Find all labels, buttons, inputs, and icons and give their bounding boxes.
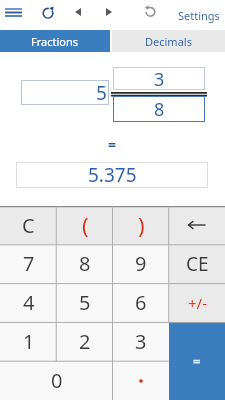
button[interactable]: 8: [57, 244, 113, 283]
staticText: =: [193, 352, 201, 370]
staticText: =: [108, 135, 117, 151]
button[interactable]: 3: [113, 67, 205, 90]
button[interactable]: Settings: [178, 8, 220, 23]
staticText: ): [138, 210, 145, 240]
button[interactable]: 0: [0, 361, 113, 400]
button[interactable]: [113, 361, 169, 400]
staticText: 9: [135, 250, 147, 277]
button[interactable]: 2: [57, 322, 113, 361]
staticText: 8: [79, 250, 91, 277]
staticText: 5.375: [88, 162, 137, 188]
button[interactable]: ): [113, 206, 169, 244]
button[interactable]: [2, 4, 24, 20]
button[interactable]: 5: [57, 283, 113, 322]
button[interactable]: 1: [0, 322, 57, 361]
staticText: 3: [135, 328, 147, 355]
staticText: 5: [96, 80, 107, 105]
button[interactable]: 9: [113, 244, 169, 283]
button[interactable]: [100, 3, 118, 21]
button[interactable]: Fractions: [0, 30, 110, 52]
staticText: 3: [154, 67, 165, 90]
button[interactable]: 6: [113, 283, 169, 322]
button[interactable]: =: [169, 322, 225, 400]
button[interactable]: +/-: [169, 283, 225, 322]
staticText: 1: [23, 328, 35, 355]
staticText: 0: [51, 367, 63, 394]
button[interactable]: CE: [169, 244, 225, 283]
staticText: 5: [79, 289, 91, 316]
button[interactable]: 8: [113, 96, 205, 122]
staticText: C: [22, 212, 35, 239]
staticText: Fractions: [31, 34, 79, 49]
button[interactable]: [140, 2, 159, 20]
button[interactable]: Decimals: [112, 30, 225, 52]
button[interactable]: 7: [0, 244, 57, 283]
button[interactable]: [69, 3, 87, 21]
button[interactable]: 3: [113, 322, 169, 361]
button[interactable]: 5.375: [16, 162, 208, 188]
staticText: 8: [154, 97, 165, 122]
button[interactable]: 5: [21, 80, 109, 105]
staticText: Decimals: [145, 34, 192, 49]
staticText: 2: [79, 328, 91, 355]
staticText: +/-: [188, 293, 207, 313]
staticText: CE: [186, 251, 209, 277]
staticText: Settings: [178, 8, 220, 23]
button[interactable]: 4: [0, 283, 57, 322]
staticText: (: [82, 210, 89, 240]
button[interactable]: (: [57, 206, 113, 244]
staticText: 7: [23, 250, 35, 277]
staticText: 4: [23, 289, 35, 316]
button[interactable]: C: [0, 206, 57, 244]
button[interactable]: [169, 206, 225, 244]
button[interactable]: [39, 3, 57, 21]
staticText: 6: [135, 289, 147, 316]
